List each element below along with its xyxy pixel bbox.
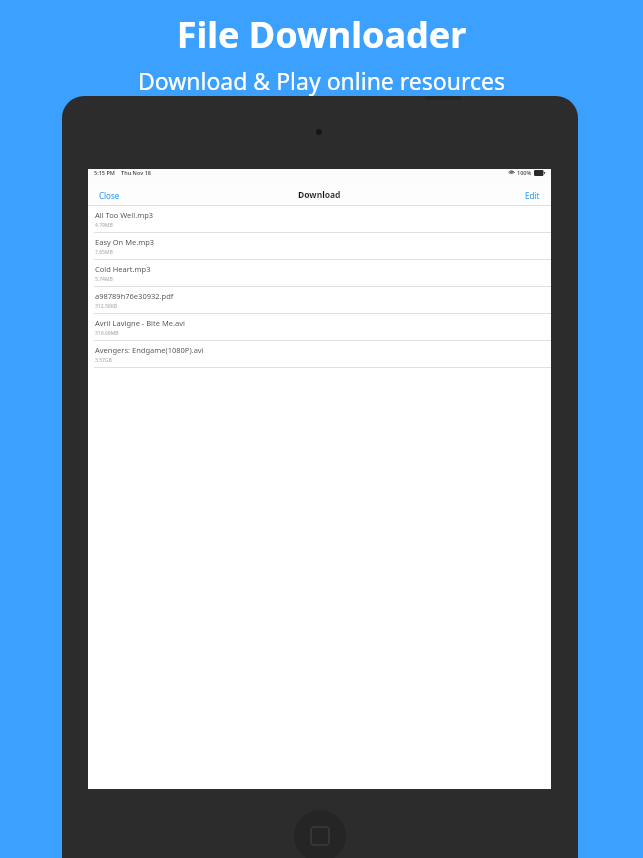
staticText: Avril Lavigne - Bite Me.avi — [95, 318, 185, 328]
staticText: 4.79MB — [95, 222, 113, 229]
button[interactable]: All Too Well.mp3 — [88, 206, 551, 233]
staticText: 3.57GB — [95, 357, 112, 364]
button[interactable]: Home — [294, 810, 346, 858]
staticText: 5.74MB — [95, 276, 113, 283]
button[interactable]: a98789h76e30932.pdf — [88, 287, 551, 314]
staticText: Close — [99, 190, 120, 201]
staticText: 312.50KB — [95, 303, 117, 310]
staticText: Download & Play online resources — [0, 65, 643, 96]
staticText: Cold Heart.mp3 — [95, 264, 151, 274]
button[interactable]: Avril Lavigne - Bite Me.avi — [88, 314, 551, 341]
staticText: Edit — [525, 190, 540, 201]
staticText: Easy On Me.mp3 — [95, 237, 155, 247]
staticText: 7.65MB — [95, 249, 113, 256]
staticText: File Downloader — [0, 10, 643, 59]
button[interactable]: Close — [96, 187, 123, 204]
button[interactable]: Avengers: Endgame(1080P).avi — [88, 341, 551, 368]
staticText: a98789h76e30932.pdf — [95, 291, 174, 301]
staticText: Download — [298, 189, 341, 201]
staticText: Thu Nov 18 — [121, 169, 151, 176]
button[interactable]: Easy On Me.mp3 — [88, 233, 551, 260]
button[interactable]: Edit — [522, 187, 543, 204]
button[interactable]: Cold Heart.mp3 — [88, 260, 551, 287]
staticText: Avengers: Endgame(1080P).avi — [95, 345, 204, 355]
staticText: All Too Well.mp3 — [95, 210, 154, 220]
staticText: 100% — [517, 169, 532, 176]
staticText: 319.69MB — [95, 330, 119, 337]
staticText: 5:15 PM — [94, 169, 115, 176]
